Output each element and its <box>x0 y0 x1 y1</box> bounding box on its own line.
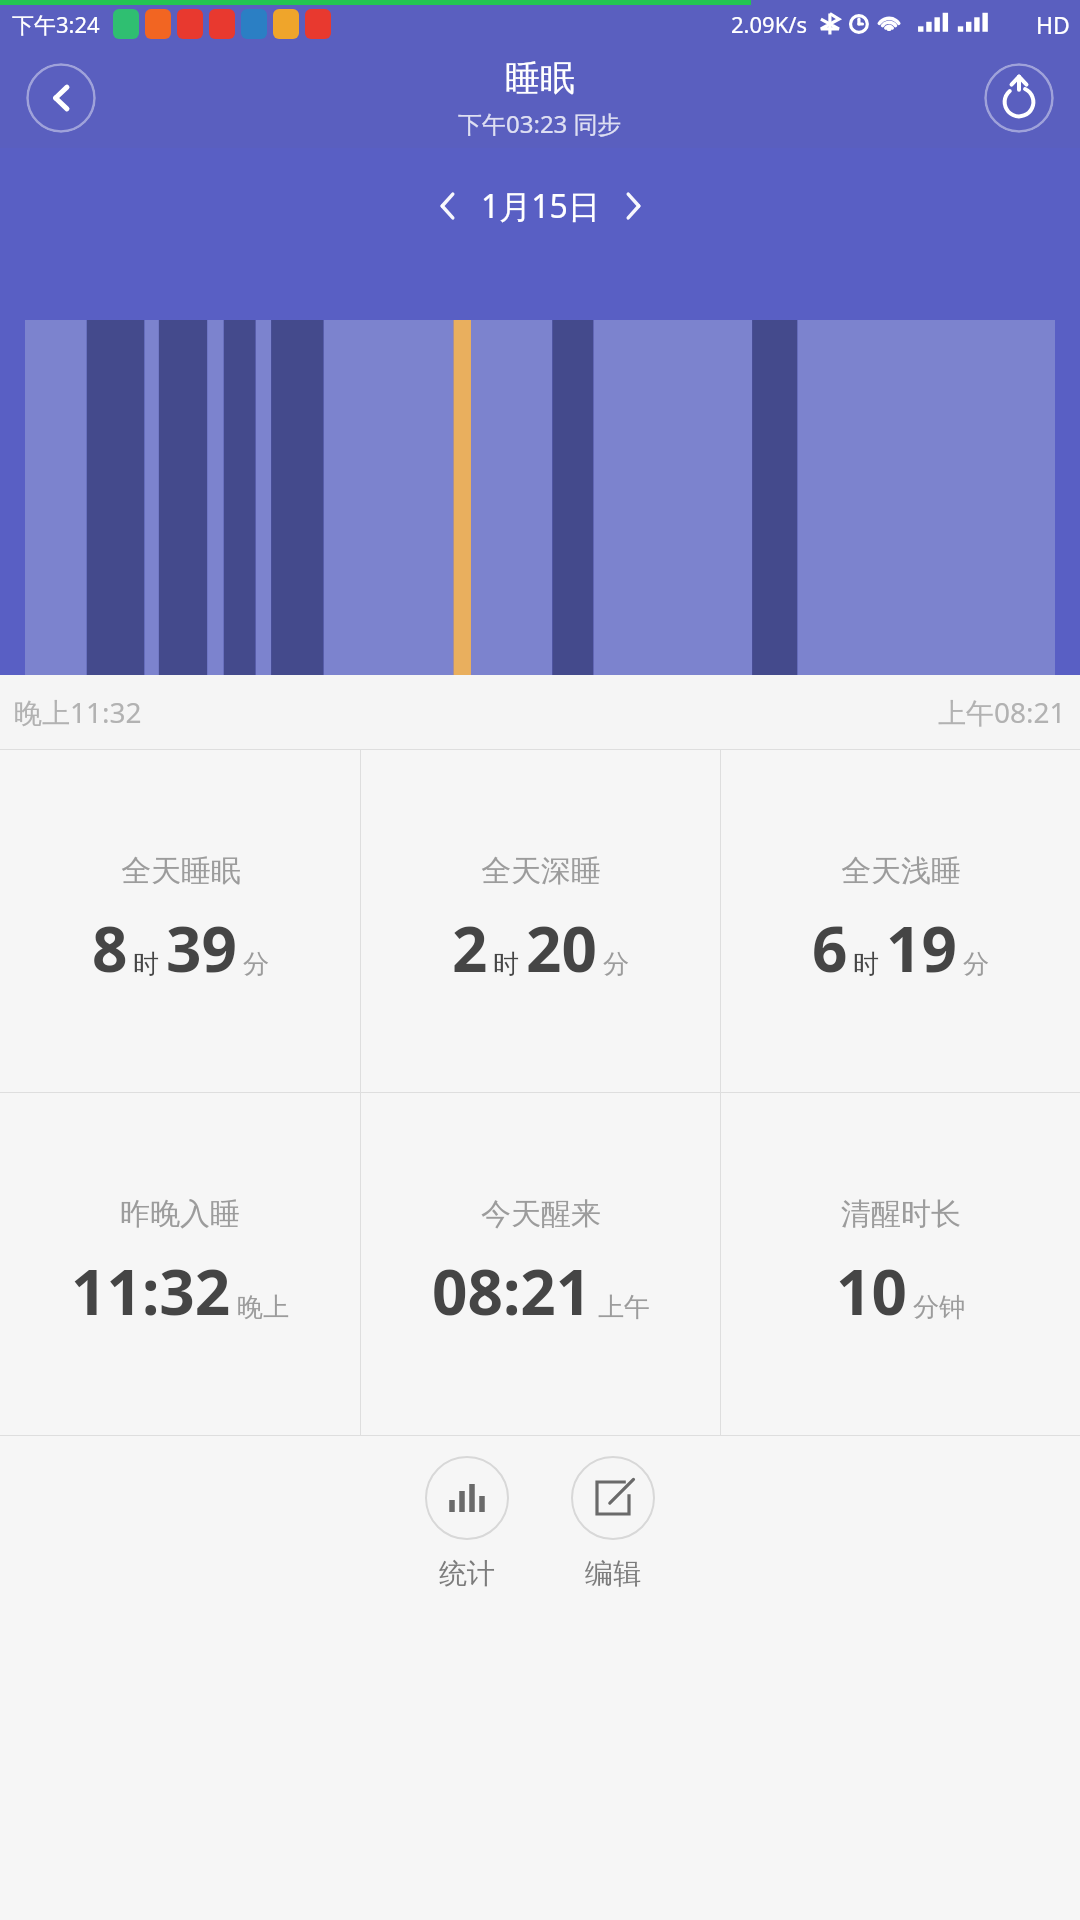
button[interactable]: Statistics <box>415 1456 519 1591</box>
staticText: 下午03:23 同步 <box>458 107 622 140</box>
staticText: 分 <box>603 948 629 981</box>
button[interactable]: Back <box>26 63 96 133</box>
staticText: 晚上 <box>237 1291 289 1324</box>
staticText: 统计 <box>439 1556 495 1591</box>
staticText: 上午 <box>598 1291 650 1324</box>
button[interactable]: 昨晚入睡 <box>0 1093 360 1435</box>
staticText: 20 <box>526 906 597 990</box>
staticText: 6 <box>812 906 848 990</box>
staticText: 11:32 <box>71 1249 231 1333</box>
button[interactable]: Sync <box>984 63 1054 133</box>
button[interactable]: 清醒时长 <box>721 1093 1080 1435</box>
staticText: 全天睡眠 <box>121 852 241 890</box>
button[interactable]: 1月15日 <box>428 178 653 234</box>
staticText: 时 <box>853 948 879 981</box>
staticText: 2.09K/s <box>731 9 807 39</box>
staticText: 昨晚入睡 <box>120 1195 240 1233</box>
staticText: 下午3:24 <box>12 9 100 39</box>
button[interactable]: 全天浅睡 <box>721 750 1080 1092</box>
staticText: 时 <box>133 948 159 981</box>
button[interactable]: 今天醒来 <box>361 1093 720 1435</box>
staticText: 分 <box>243 948 269 981</box>
staticText: 全天深睡 <box>481 852 601 890</box>
staticText: 睡眠 <box>505 56 575 100</box>
staticText: 上午08:21 <box>938 693 1066 731</box>
staticText: 分 <box>963 948 989 981</box>
staticText: 时 <box>493 948 519 981</box>
staticText: 39 <box>166 906 237 990</box>
staticText: 今天醒来 <box>481 1195 601 1233</box>
staticText: 编辑 <box>585 1556 641 1591</box>
button[interactable]: Edit <box>561 1456 665 1591</box>
staticText: 晚上11:32 <box>14 693 142 731</box>
staticText: 清醒时长 <box>841 1195 961 1233</box>
staticText: 8 <box>92 906 128 990</box>
staticText: 10 <box>836 1249 907 1333</box>
staticText: 分钟 <box>913 1291 965 1324</box>
staticText: 08:21 <box>432 1249 592 1333</box>
button[interactable]: 全天睡眠 <box>0 750 360 1092</box>
button[interactable]: 全天深睡 <box>361 750 720 1092</box>
staticText: 19 <box>886 906 957 990</box>
staticText: 2 <box>452 906 488 990</box>
staticText: 1月15日 <box>481 184 600 228</box>
staticText: HD <box>1036 9 1070 40</box>
staticText: 全天浅睡 <box>841 852 961 890</box>
